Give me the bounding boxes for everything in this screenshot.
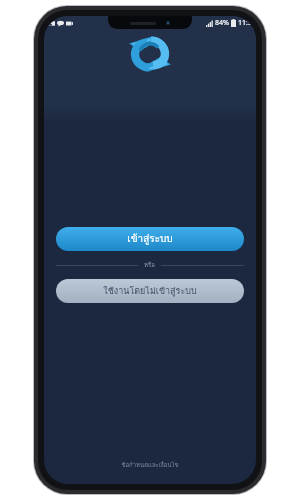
button[interactable]: ใช้งานโดยไม่เข้าสู่ระบบ xyxy=(56,279,244,303)
staticText: เข้าสู่ระบบ xyxy=(127,231,173,247)
staticText: 84% xyxy=(215,18,229,28)
staticText: ข้อกำหนดและเงื่อนไข xyxy=(121,460,179,470)
staticText: 11:5 xyxy=(238,18,252,28)
staticText: ใช้งานโดยไม่เข้าสู่ระบบ xyxy=(103,284,197,298)
button[interactable]: ข้อกำหนดและเงื่อนไข xyxy=(44,460,256,470)
button[interactable]: เข้าสู่ระบบ xyxy=(56,227,244,251)
staticText: หรือ xyxy=(144,260,155,270)
